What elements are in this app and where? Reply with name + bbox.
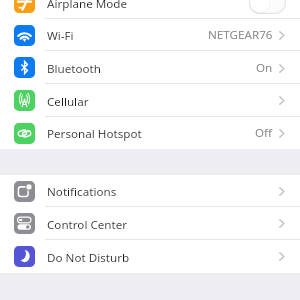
staticText: Notifications	[47, 184, 117, 200]
button[interactable]: Cellular	[0, 84, 300, 117]
staticText: Control Center	[47, 217, 128, 233]
button[interactable]: Airplane Mode	[0, 0, 300, 19]
button[interactable]: Bluetooth	[0, 51, 300, 84]
button[interactable]: Do Not Disturb	[0, 240, 300, 273]
button[interactable]: Personal Hotspot	[0, 117, 300, 149]
staticText: Do Not Disturb	[47, 250, 130, 266]
staticText: Cellular	[47, 94, 89, 110]
staticText: Personal Hotspot	[47, 126, 142, 142]
staticText: Airplane Mode	[47, 0, 128, 12]
staticText: Off	[255, 125, 273, 141]
button[interactable]: Wi-Fi	[0, 19, 300, 51]
staticText: On	[256, 60, 273, 76]
staticText: Bluetooth	[47, 61, 102, 77]
staticText: NETGEAR76	[208, 27, 273, 43]
other: Airplane Mode toggle	[249, 0, 286, 14]
button[interactable]: Notifications	[0, 175, 300, 207]
staticText: Wi-Fi	[47, 28, 74, 44]
button[interactable]: Control Center	[0, 207, 300, 240]
